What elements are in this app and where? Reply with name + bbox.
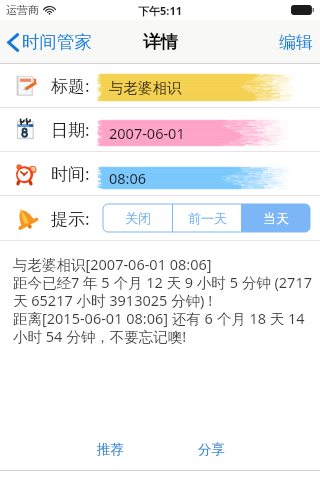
staticText: 当天 <box>263 210 289 226</box>
staticText: 与老婆相识 <box>109 79 182 97</box>
staticText: 时间: <box>51 162 90 185</box>
staticText: 运营商 <box>6 3 39 17</box>
button[interactable]: 当天 <box>242 204 310 232</box>
button[interactable]: 前一天 <box>173 204 241 232</box>
staticText: 下午5:11 <box>138 3 182 18</box>
staticText: 前一天 <box>188 210 227 226</box>
staticText: 日期: <box>51 118 90 141</box>
staticText: 2007-06-01 <box>109 123 185 143</box>
button[interactable]: 时间: <box>0 152 320 195</box>
staticText: 标题: <box>51 74 90 97</box>
button[interactable]: 编辑 <box>267 20 320 64</box>
button[interactable]: 分享 <box>183 435 239 463</box>
staticText: 分享 <box>198 441 225 458</box>
button[interactable]: 日期: <box>0 108 320 151</box>
button[interactable]: 时间管家 <box>7 20 92 64</box>
button[interactable]: 关闭 <box>103 204 172 232</box>
staticText: 关闭 <box>125 210 151 226</box>
staticText: 提示: <box>51 207 90 230</box>
button[interactable]: 标题: <box>0 64 320 107</box>
button[interactable]: 推荐 <box>82 435 138 463</box>
staticText: 与老婆相识[2007-06-01 08:06] 距今已经7 年 5 个月 12 … <box>13 254 314 346</box>
staticText: 推荐 <box>97 441 124 458</box>
staticText: 08:06 <box>109 168 147 188</box>
staticText: 编辑 <box>279 32 313 53</box>
staticText: 详情 <box>143 31 178 53</box>
staticText: 时间管家 <box>22 31 92 53</box>
